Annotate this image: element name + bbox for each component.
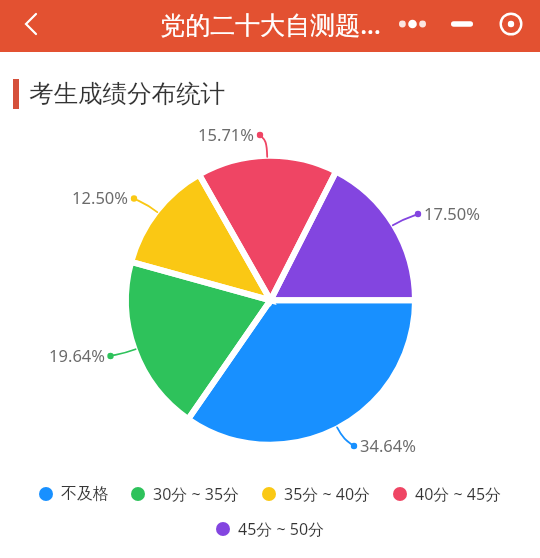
button[interactable]: Back <box>0 0 62 50</box>
button[interactable]: More <box>388 0 437 50</box>
staticText: 40分 ~ 45分 <box>415 483 502 505</box>
staticText: 34.64% <box>360 434 430 456</box>
staticText: 15.71% <box>184 123 254 145</box>
button[interactable]: Minimize <box>437 0 486 50</box>
staticText: 不及格 <box>61 484 109 504</box>
staticText: 12.50% <box>58 186 128 208</box>
button[interactable]: 45分 ~ 50分 <box>216 518 325 540</box>
button[interactable]: Close <box>486 0 535 50</box>
staticText: 35分 ~ 40分 <box>284 483 371 505</box>
button[interactable]: 35分 ~ 40分 <box>262 483 371 505</box>
button[interactable]: 不及格 <box>39 484 109 504</box>
staticText: 17.50% <box>424 202 494 224</box>
staticText: 19.64% <box>35 344 105 366</box>
staticText: 45分 ~ 50分 <box>238 518 325 540</box>
staticText: 考生成绩分布统计 <box>29 78 225 109</box>
staticText: 30分 ~ 35分 <box>153 483 240 505</box>
button[interactable]: 40分 ~ 45分 <box>393 483 502 505</box>
staticText: 党的二十大自测题... <box>160 7 381 41</box>
button[interactable]: 30分 ~ 35分 <box>131 483 240 505</box>
